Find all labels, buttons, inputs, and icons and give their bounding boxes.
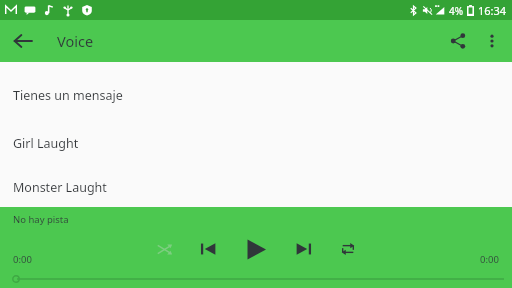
staticText: 0:00 bbox=[13, 253, 32, 266]
button[interactable]: Share bbox=[440, 23, 476, 59]
staticText: Voice bbox=[57, 31, 94, 51]
button[interactable]: Next bbox=[291, 236, 317, 262]
button[interactable]: Repeat bbox=[335, 236, 361, 262]
button[interactable]: Tienes un mensaje bbox=[0, 71, 512, 119]
staticText: Girl Laught bbox=[13, 135, 79, 152]
button[interactable]: Shuffle bbox=[151, 236, 177, 262]
staticText: 4% bbox=[449, 4, 464, 18]
button[interactable]: Play bbox=[239, 232, 273, 266]
button[interactable]: Previous bbox=[195, 236, 221, 262]
button[interactable]: Monster Laught bbox=[0, 167, 512, 207]
button[interactable]: Girl Laught bbox=[0, 119, 512, 167]
staticText: Monster Laught bbox=[13, 179, 107, 196]
staticText: 16:34 bbox=[478, 3, 507, 18]
button[interactable]: More options bbox=[476, 25, 508, 57]
staticText: No hay pista bbox=[13, 213, 69, 226]
staticText: 0:00 bbox=[480, 253, 499, 266]
button[interactable]: Back bbox=[5, 23, 41, 59]
staticText: Tienes un mensaje bbox=[13, 87, 123, 104]
